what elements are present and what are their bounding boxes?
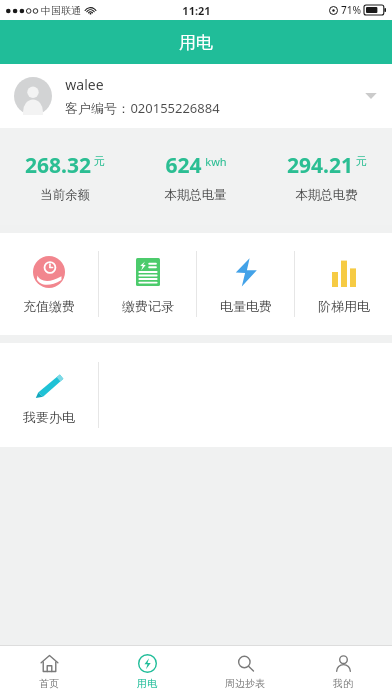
- staticText: 充值缴费: [23, 298, 75, 314]
- staticText: 周边抄表: [225, 677, 265, 690]
- staticText: 缴费记录: [122, 298, 174, 314]
- button[interactable]: walee: [0, 64, 392, 128]
- staticText: 中国联通: [41, 4, 81, 17]
- button[interactable]: 624: [130, 151, 261, 203]
- staticText: 用电: [137, 677, 157, 690]
- button[interactable]: 首页: [0, 646, 98, 696]
- staticText: 624: [165, 151, 202, 180]
- staticText: 当前余额: [40, 187, 90, 203]
- staticText: 本期总电量: [164, 187, 227, 203]
- button[interactable]: 我的: [294, 646, 392, 696]
- button[interactable]: 阶梯用电: [295, 233, 392, 335]
- staticText: 阶梯用电: [318, 298, 370, 314]
- button[interactable]: 电量电费: [197, 233, 294, 335]
- staticText: 客户编号：: [65, 100, 130, 116]
- staticText: walee: [65, 75, 104, 94]
- staticText: 电量电费: [220, 298, 272, 314]
- button[interactable]: 268.32: [0, 151, 130, 203]
- staticText: 268.32: [25, 151, 91, 180]
- staticText: 71%: [341, 3, 361, 17]
- button[interactable]: 用电: [98, 646, 196, 696]
- staticText: 020155226884: [130, 99, 220, 117]
- button[interactable]: 缴费记录: [99, 233, 196, 335]
- button[interactable]: 周边抄表: [196, 646, 294, 696]
- staticText: 11:21: [182, 3, 211, 18]
- button[interactable]: 充值缴费: [0, 233, 98, 335]
- staticText: 用电: [179, 32, 213, 53]
- staticText: 294.21: [287, 151, 353, 180]
- staticText: 元: [356, 154, 367, 168]
- staticText: 首页: [39, 677, 59, 690]
- button[interactable]: 我要办电: [0, 343, 98, 447]
- button[interactable]: 294.21: [261, 151, 392, 203]
- staticText: 元: [94, 154, 105, 168]
- staticText: 我的: [333, 677, 353, 690]
- staticText: 我要办电: [23, 409, 75, 425]
- staticText: kwh: [205, 154, 227, 169]
- other: Expand account selector: [364, 89, 378, 103]
- staticText: 本期总电费: [295, 187, 358, 203]
